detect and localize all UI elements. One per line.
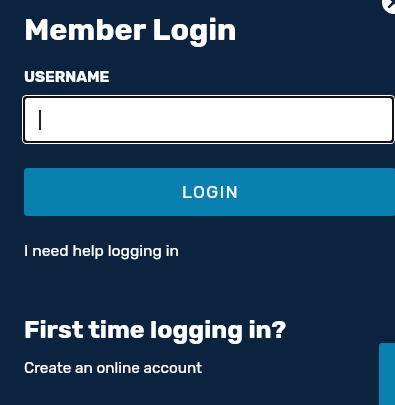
button[interactable]: Close bbox=[382, 0, 395, 14]
staticText: USERNAME bbox=[24, 68, 110, 86]
button[interactable]: I need help logging in bbox=[24, 241, 180, 260]
staticText: Member Login bbox=[24, 11, 237, 47]
button[interactable]: Username field bbox=[25, 98, 392, 141]
staticText: First time logging in? bbox=[24, 315, 287, 345]
button[interactable]: LOGIN bbox=[24, 168, 395, 216]
staticText: I need help logging in bbox=[24, 241, 180, 260]
staticText: LOGIN bbox=[182, 182, 239, 203]
staticText: Create an online account bbox=[24, 359, 203, 377]
button[interactable]: Create an online account bbox=[24, 359, 203, 377]
button[interactable]: Chat bbox=[379, 343, 395, 405]
